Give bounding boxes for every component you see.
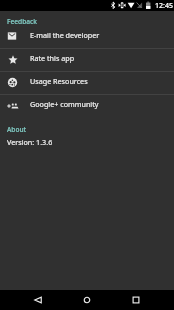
button[interactable]: Rate this app xyxy=(0,49,174,71)
staticText: Version: 1.3.6 xyxy=(7,137,53,147)
button[interactable]: Back xyxy=(26,290,50,310)
staticText: Feedback xyxy=(7,17,37,26)
button[interactable]: E-mail the developer xyxy=(0,26,174,48)
staticText: Google+ community xyxy=(30,99,99,109)
button[interactable]: Usage Resources xyxy=(0,72,174,94)
button[interactable]: Google+ community xyxy=(0,95,174,117)
button[interactable]: Recent apps xyxy=(124,290,148,310)
button[interactable]: Home xyxy=(75,290,99,310)
staticText: Rate this app xyxy=(30,53,75,63)
staticText: About xyxy=(7,125,27,134)
staticText: Usage Resources xyxy=(30,76,88,86)
staticText: 12:45 xyxy=(155,1,173,11)
staticText: E-mail the developer xyxy=(30,30,100,40)
